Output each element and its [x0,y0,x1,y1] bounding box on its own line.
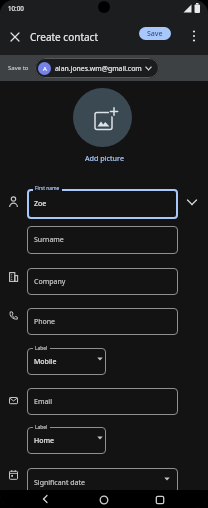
staticText: Email [34,397,52,407]
staticText: 10:00 [8,4,24,12]
staticText: Label [35,345,48,352]
staticText: Label [35,424,48,431]
button[interactable] [153,493,167,507]
staticText: A [43,65,47,73]
staticText: Home [34,436,54,446]
button[interactable]: Save [139,27,171,40]
staticText: Save [147,29,163,39]
button[interactable]: Home [27,427,106,454]
staticText: First name [35,185,60,192]
button[interactable]: Company [27,268,178,295]
staticText: Add picture [85,153,124,163]
button[interactable] [97,493,111,507]
button[interactable]: Phone [27,308,178,335]
button[interactable] [73,88,132,147]
staticText: alan.jones.wm@gmail.com [55,64,142,73]
staticText: Phone [34,317,56,327]
button[interactable] [38,492,52,506]
button[interactable]: Mobile [27,348,106,375]
staticText: Zoe [34,199,47,209]
button[interactable]: Zoe [27,189,178,219]
staticText: Save to [8,64,29,72]
button[interactable] [6,28,24,46]
button[interactable] [183,194,201,210]
staticText: Create contact [30,30,99,44]
staticText: Surname [34,235,64,245]
button[interactable]: A [35,58,159,78]
button[interactable] [188,28,200,44]
staticText: Company [34,277,66,287]
button[interactable]: Email [27,388,178,415]
staticText: Significant date [34,478,85,488]
staticText: Mobile [34,357,57,367]
button[interactable]: Surname [27,226,178,254]
button[interactable]: Add picture [0,152,208,164]
button[interactable]: Significant date [27,468,178,497]
